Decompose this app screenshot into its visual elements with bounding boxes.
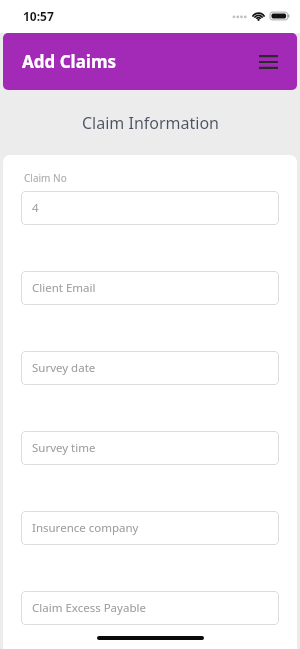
staticText: 4: [32, 200, 39, 216]
button[interactable]: Survey date: [21, 351, 279, 385]
staticText: Client Email: [32, 280, 96, 296]
staticText: Claim Excess Payable: [32, 600, 146, 616]
staticText: Survey date: [32, 360, 96, 376]
button[interactable]: Open navigation menu: [251, 45, 285, 79]
button[interactable]: 4: [21, 191, 279, 225]
staticText: 10:57: [23, 8, 54, 24]
staticText: Survey time: [32, 440, 96, 456]
staticText: Insurence company: [32, 520, 139, 536]
button[interactable]: Insurence company: [21, 511, 279, 545]
staticText: Add Claims: [22, 50, 117, 73]
button[interactable]: Survey time: [21, 431, 279, 465]
staticText: Claim Information: [82, 112, 219, 134]
staticText: Claim No: [24, 171, 67, 185]
button[interactable]: Claim Excess Payable: [21, 591, 279, 625]
button[interactable]: Client Email: [21, 271, 279, 305]
